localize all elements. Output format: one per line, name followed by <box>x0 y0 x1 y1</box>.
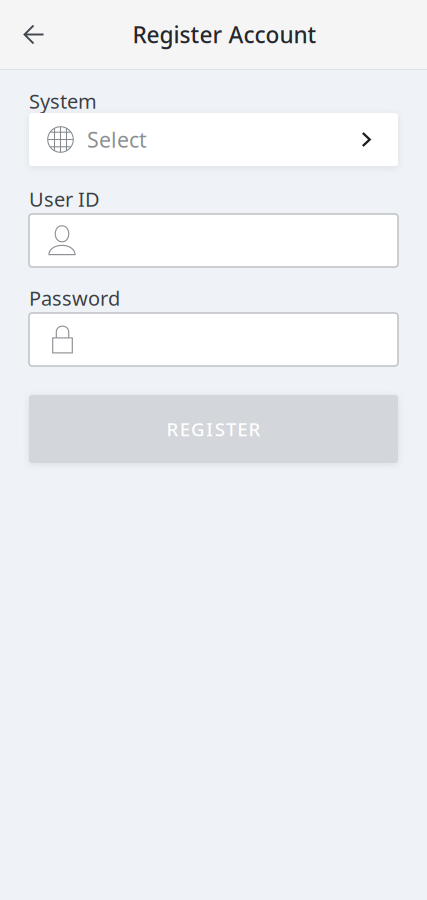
staticText: Select <box>87 125 147 154</box>
staticText: REGISTER <box>166 417 261 441</box>
staticText: System <box>29 88 97 114</box>
button[interactable]: REGISTER <box>29 395 398 463</box>
button[interactable]: Select <box>29 113 398 166</box>
button[interactable]: Back <box>0 0 56 68</box>
staticText: Password <box>29 285 120 311</box>
staticText: Register Account <box>132 19 316 49</box>
staticText: User ID <box>29 186 100 212</box>
